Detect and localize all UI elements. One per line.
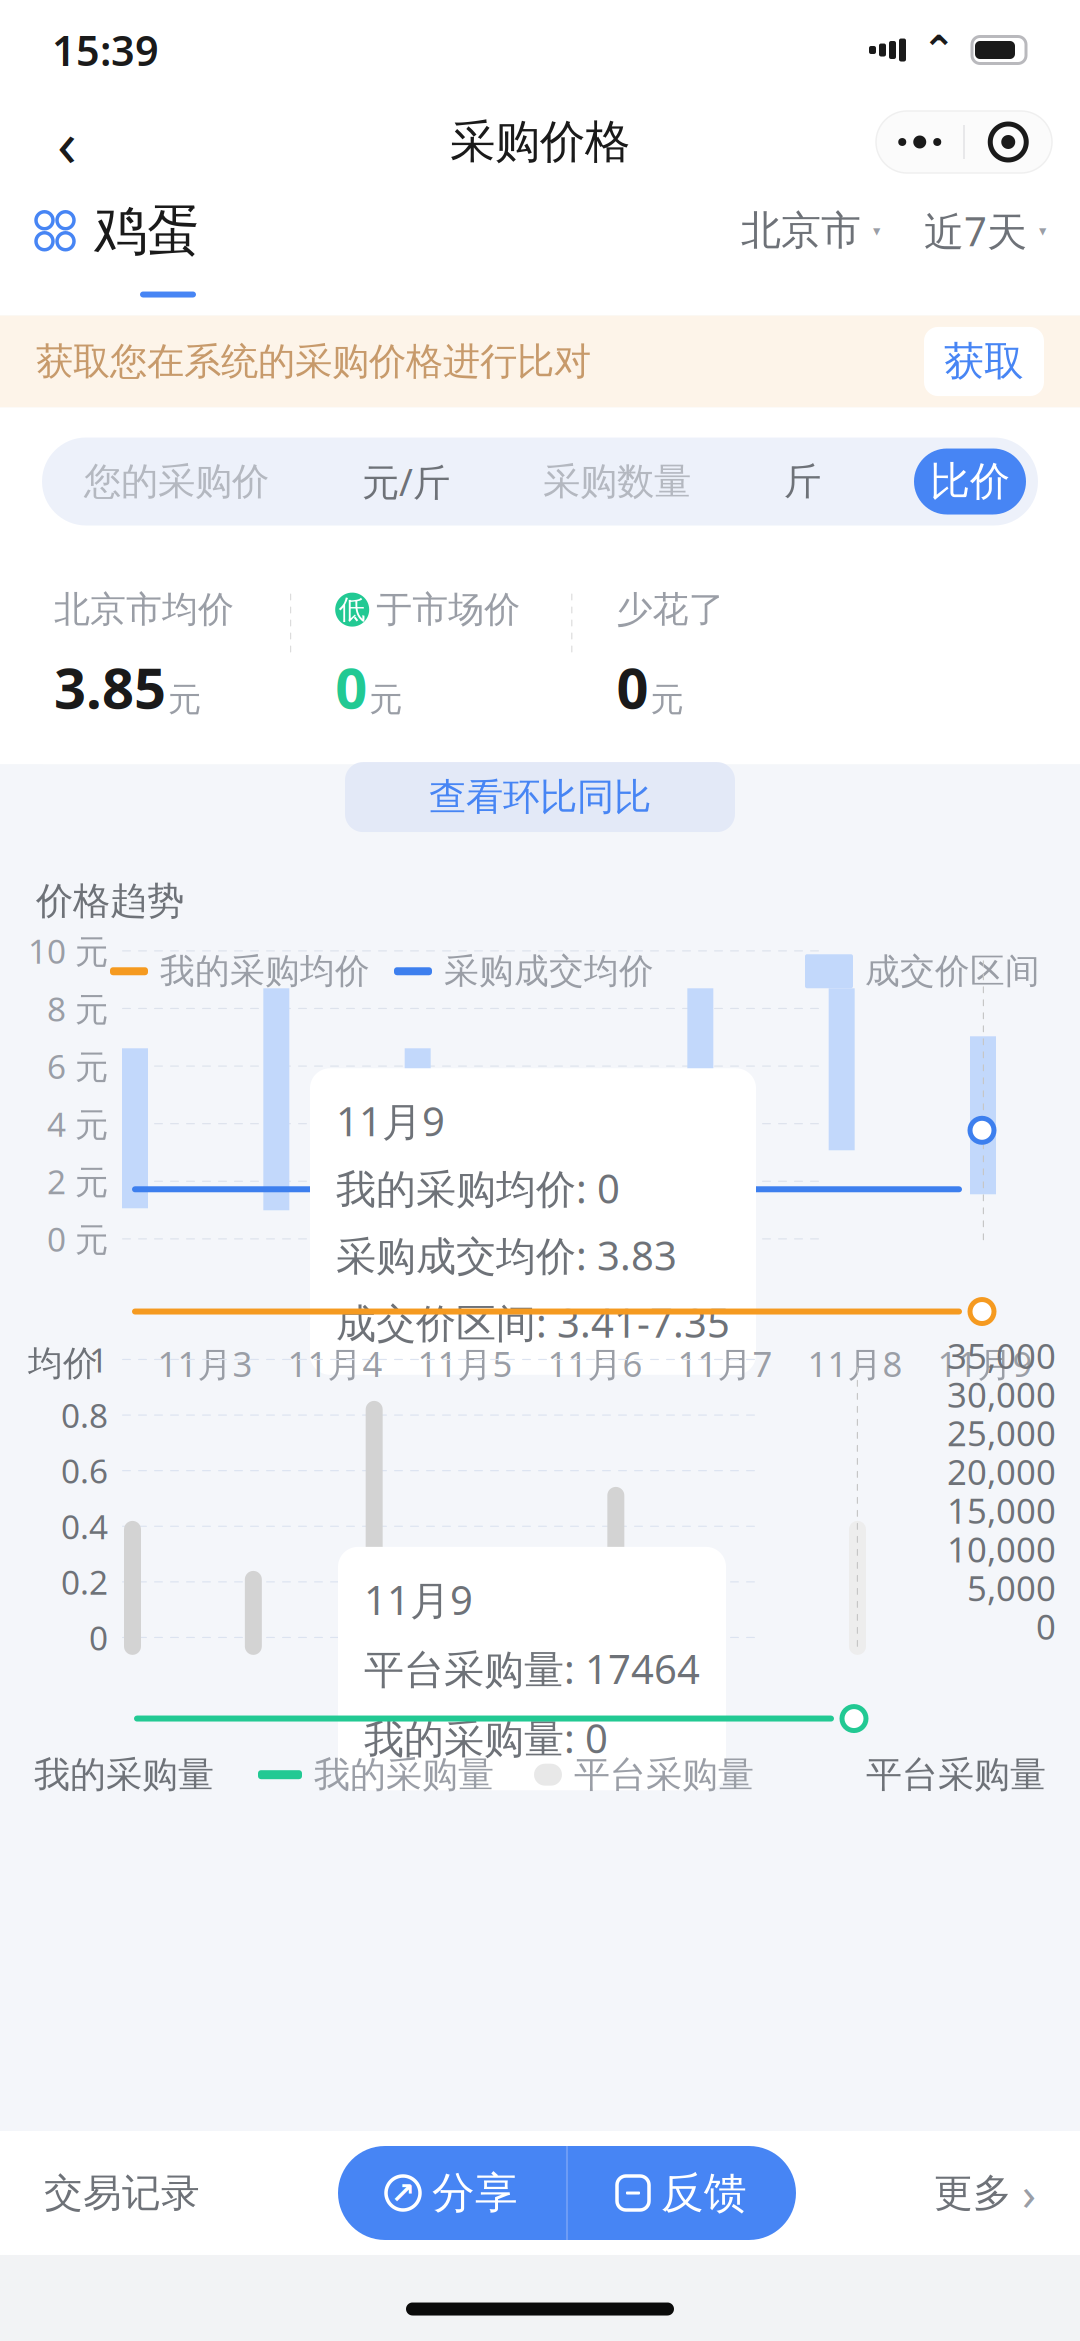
staticText: ↗ xyxy=(390,2176,415,2210)
staticText: 2 元 xyxy=(47,1159,108,1203)
staticText: 成交价区间: 3.41-7.35 xyxy=(336,1296,730,1349)
staticText: ▾ xyxy=(873,222,880,239)
staticText: 30,000 xyxy=(947,1371,1056,1417)
staticText: 我的采购均价: 0 xyxy=(336,1161,620,1214)
button[interactable]: 近7天 xyxy=(924,196,1046,265)
staticText: 我的采购量 xyxy=(34,1753,214,1797)
staticText: 11月3 xyxy=(157,1340,252,1386)
staticText: 11月5 xyxy=(417,1340,512,1386)
staticText: 0 xyxy=(1036,1603,1056,1649)
staticText: 10 元 xyxy=(28,929,108,973)
button[interactable]: ↗ xyxy=(338,2146,566,2240)
button[interactable]: 交易记录 xyxy=(34,2149,210,2237)
staticText: 均价 xyxy=(28,1342,98,1385)
staticText: 0 xyxy=(616,650,648,724)
button[interactable]: More options xyxy=(876,112,963,172)
staticText: 10,000 xyxy=(947,1526,1056,1572)
staticText: 平台采购量 xyxy=(574,1753,754,1797)
staticText: 平台采购量: 17464 xyxy=(364,1642,700,1695)
staticText: 11月9 xyxy=(336,1094,445,1147)
staticText: 比价 xyxy=(930,457,1010,506)
staticText: 15:39 xyxy=(52,23,159,77)
staticText: 3.85 xyxy=(54,650,166,724)
staticText: 元/斤 xyxy=(362,457,450,506)
staticText: 11月8 xyxy=(807,1340,902,1386)
staticText: 反馈 xyxy=(661,2167,747,2219)
staticText: 15,000 xyxy=(947,1487,1056,1533)
staticText: 近7天 xyxy=(924,204,1027,257)
staticText: ⌃ xyxy=(922,27,956,73)
button[interactable]: 比价 xyxy=(914,448,1026,514)
button[interactable]: 反馈 xyxy=(568,2146,796,2240)
button[interactable]: 查看环比同比 xyxy=(345,762,735,832)
staticText: ‹ xyxy=(57,99,77,184)
staticText: 4 元 xyxy=(47,1102,108,1146)
staticText: 鸡蛋 xyxy=(94,198,200,263)
staticText: 11月7 xyxy=(677,1340,772,1386)
staticText: 成交价区间 xyxy=(865,950,1040,992)
button[interactable]: Close xyxy=(965,112,1052,172)
staticText: 0 xyxy=(335,650,367,724)
staticText: 我的采购均价 xyxy=(160,950,370,992)
button[interactable]: 鸡蛋 xyxy=(34,192,200,269)
staticText: 采购成交均价: 3.83 xyxy=(336,1228,677,1282)
staticText: 采购数量 xyxy=(543,459,691,504)
staticText: 交易记录 xyxy=(44,2169,200,2217)
staticText: 0 xyxy=(89,1615,108,1660)
staticText: 1 xyxy=(89,1337,108,1382)
staticText: 0.8 xyxy=(61,1393,108,1437)
staticText: 35,000 xyxy=(947,1332,1056,1378)
staticText: 北京市 xyxy=(741,206,861,255)
staticText: 元 xyxy=(369,679,402,720)
staticText: › xyxy=(1022,2163,1036,2223)
staticText: 8 元 xyxy=(47,986,108,1031)
staticText: 0.4 xyxy=(61,1504,108,1548)
staticText: 0.6 xyxy=(61,1449,108,1493)
staticText: 6 元 xyxy=(47,1044,108,1088)
staticText: 更多 xyxy=(934,2169,1012,2217)
staticText: 少花了 xyxy=(616,587,724,632)
staticText: 价格趋势 xyxy=(36,878,184,924)
staticText: 分享 xyxy=(432,2167,518,2219)
staticText: 低 xyxy=(339,593,366,626)
staticText: 获取您在系统的采购价格进行比对 xyxy=(36,339,591,384)
staticText: 平台采购量 xyxy=(866,1753,1046,1797)
staticText: 5,000 xyxy=(967,1565,1056,1611)
staticText: 于市场价 xyxy=(376,587,520,632)
staticText: 您的采购价 xyxy=(84,459,269,504)
button[interactable]: 获取 xyxy=(924,327,1044,396)
staticText: 斤 xyxy=(784,459,821,504)
staticText: 25,000 xyxy=(947,1410,1056,1456)
button[interactable]: 更多 xyxy=(924,2143,1046,2243)
staticText: 11月6 xyxy=(547,1340,642,1386)
staticText: 0 元 xyxy=(47,1217,108,1261)
staticText: 20,000 xyxy=(947,1449,1056,1495)
staticText: 采购价格 xyxy=(450,114,630,170)
staticText: 查看环比同比 xyxy=(429,774,651,820)
staticText: 11月4 xyxy=(287,1340,382,1386)
staticText: 北京市均价 xyxy=(54,587,234,632)
staticText: 采购成交均价 xyxy=(444,950,654,992)
staticText: 11月9 xyxy=(937,1340,1032,1386)
staticText: ▾ xyxy=(1039,222,1046,239)
staticText: 我的采购量: 0 xyxy=(364,1711,608,1764)
staticText: 11月9 xyxy=(364,1573,473,1626)
staticText: 获取 xyxy=(944,337,1024,386)
staticText: 元 xyxy=(168,679,201,720)
staticText: 我的采购量 xyxy=(314,1753,494,1797)
button[interactable]: Back xyxy=(28,103,106,181)
staticText: 0.2 xyxy=(61,1560,108,1604)
button[interactable]: 北京市 xyxy=(741,198,880,263)
staticText: 元 xyxy=(650,679,683,720)
